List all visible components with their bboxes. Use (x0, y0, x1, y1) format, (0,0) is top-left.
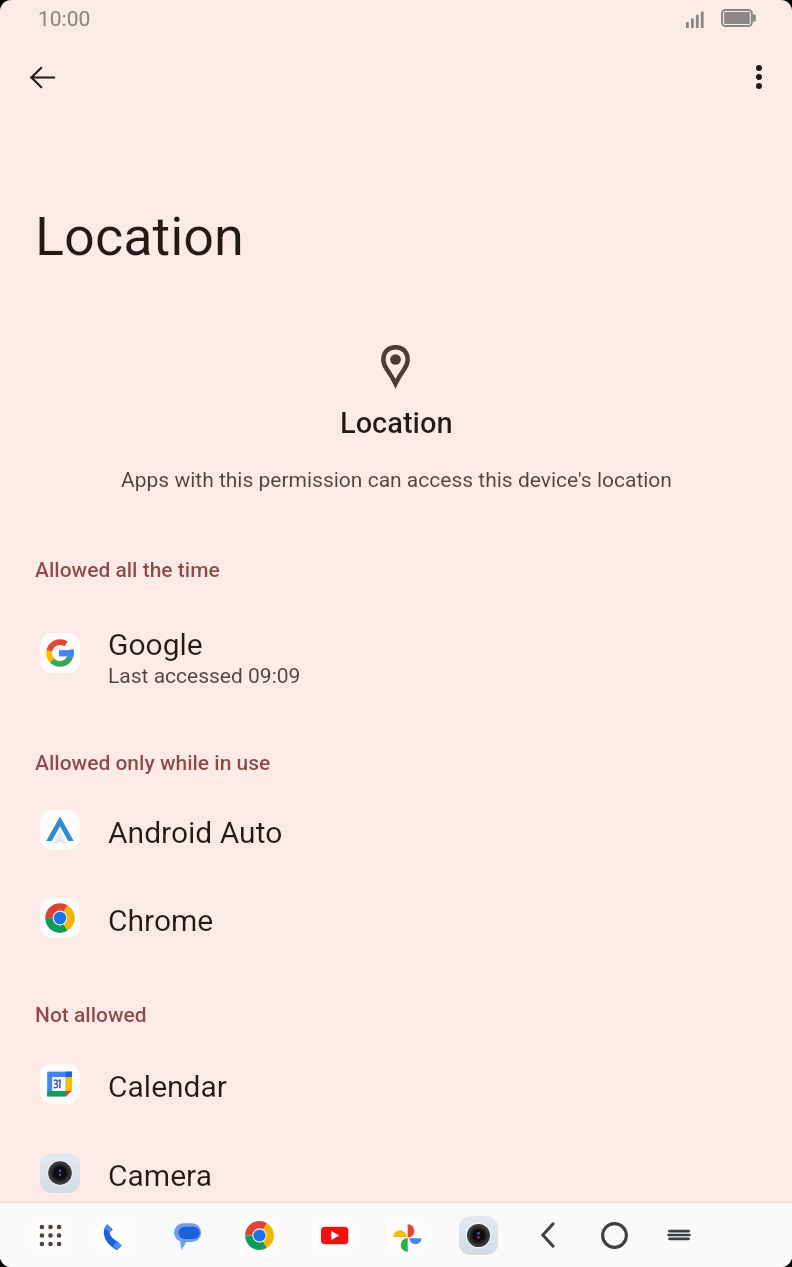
staticText: Chrome (108, 903, 214, 938)
button[interactable]: All apps (20, 1205, 80, 1265)
staticText: Google (108, 627, 203, 662)
staticText: Last accessed 09:09 (108, 664, 301, 689)
button[interactable]: Back (518, 1205, 578, 1265)
button: Not allowed (27, 995, 155, 1036)
button[interactable]: Calendar (0, 1049, 792, 1119)
button[interactable]: Back (18, 53, 66, 101)
button[interactable]: Recent apps (649, 1205, 709, 1265)
button[interactable]: YouTube (303, 1205, 363, 1265)
button: Allowed all the time (27, 550, 228, 591)
staticText: 10:00 (38, 7, 91, 32)
button[interactable]: Android Auto (0, 795, 792, 865)
staticText: Allowed all the time (35, 558, 220, 583)
button[interactable]: More options (735, 53, 783, 101)
staticText: Android Auto (108, 815, 283, 850)
button[interactable]: Phone (84, 1205, 144, 1265)
button[interactable]: Chrome (0, 883, 792, 953)
button[interactable]: Photos (376, 1205, 436, 1265)
staticText: Not allowed (35, 1003, 147, 1028)
staticText: Location (340, 406, 453, 440)
staticText: Apps with this permission can access thi… (121, 468, 672, 493)
button[interactable]: Messages (157, 1205, 217, 1265)
button[interactable]: Home (584, 1205, 644, 1265)
staticText: Allowed only while in use (35, 751, 271, 776)
button: Allowed only while in use (27, 743, 279, 784)
button[interactable]: Google (0, 618, 792, 688)
button[interactable]: Camera (448, 1205, 508, 1265)
button[interactable]: Chrome (229, 1205, 289, 1265)
staticText: Camera (108, 1158, 212, 1193)
staticText: Calendar (108, 1069, 228, 1104)
button[interactable]: Camera (0, 1138, 792, 1208)
staticText: Location (35, 205, 244, 268)
